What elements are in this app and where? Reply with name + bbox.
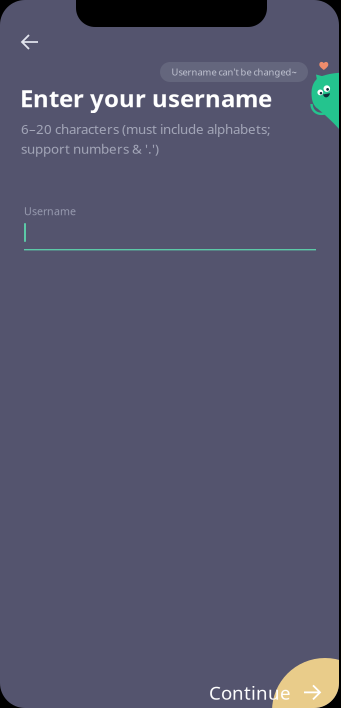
staticText: Continue <box>209 680 291 705</box>
button[interactable]: Continue <box>205 672 325 708</box>
staticText: 6–20 characters (must include alphabets; <box>21 120 271 138</box>
staticText: support numbers & '.') <box>21 140 159 157</box>
staticText: Enter your username <box>20 82 272 114</box>
staticText: Username can't be changed~ <box>171 66 296 78</box>
button[interactable]: Back <box>10 22 50 62</box>
staticText: Username <box>24 204 76 218</box>
